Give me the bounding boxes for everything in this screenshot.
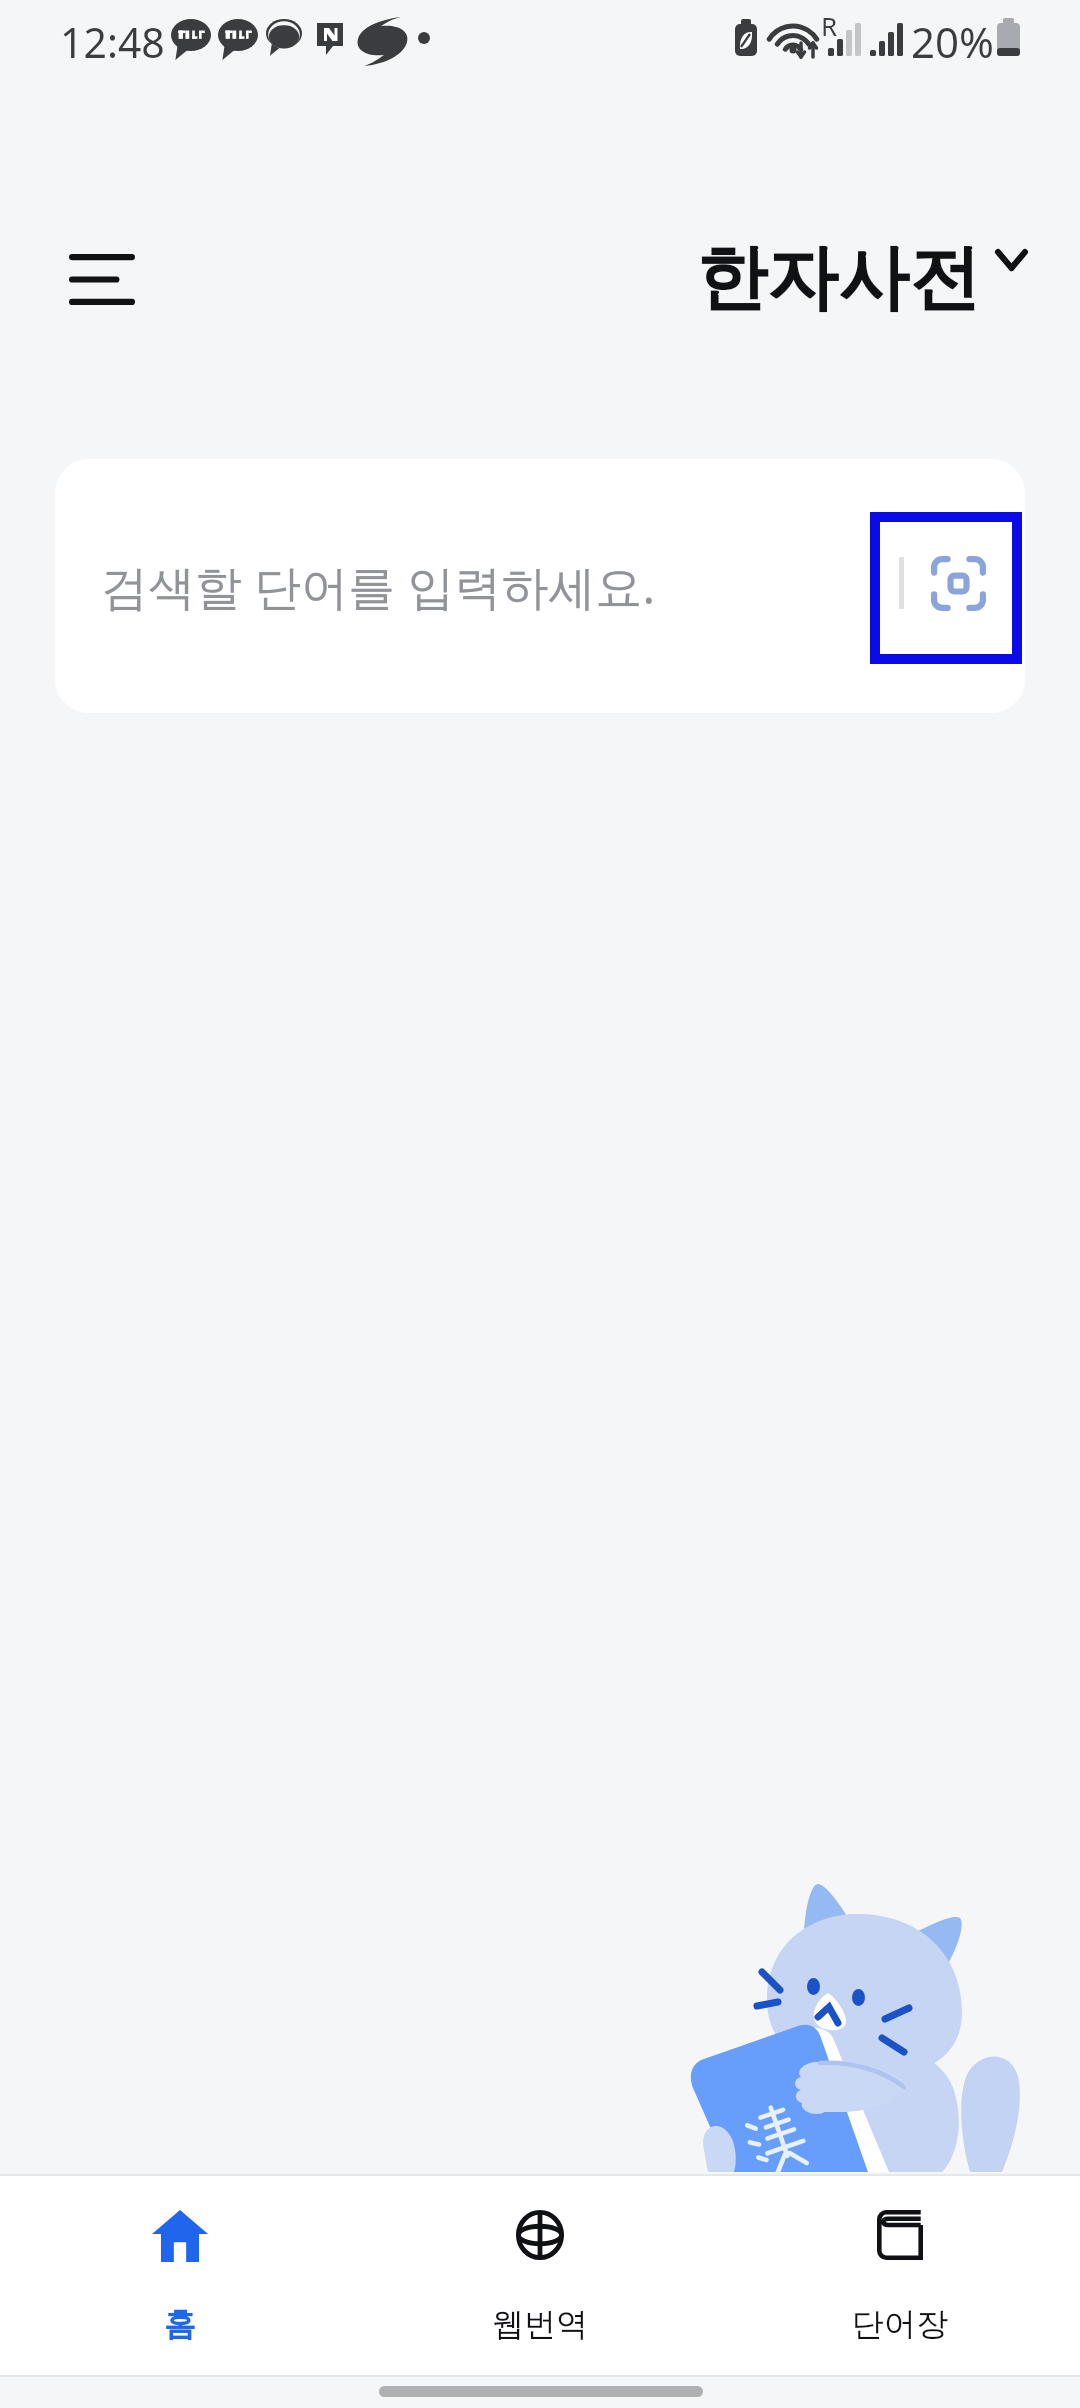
button[interactable]: 한자사전 [682,200,1040,312]
staticText: 20% [911,13,994,70]
staticText: 단어장 [852,2304,948,2344]
button[interactable]: 웹번역 [360,2176,720,2375]
button[interactable]: Menu [38,231,165,327]
staticText: R [821,8,838,43]
staticText: 검색할 단어를 입력하세요. [101,554,656,618]
button[interactable]: 홈 [0,2176,360,2375]
staticText: 웹번역 [492,2304,588,2344]
staticText: 홈 [164,2304,196,2344]
button[interactable]: 단어장 [720,2176,1080,2375]
staticText: 한자사전 [696,234,980,323]
staticText: 12:48 [60,14,165,70]
button[interactable]: Scan text [880,522,1012,654]
